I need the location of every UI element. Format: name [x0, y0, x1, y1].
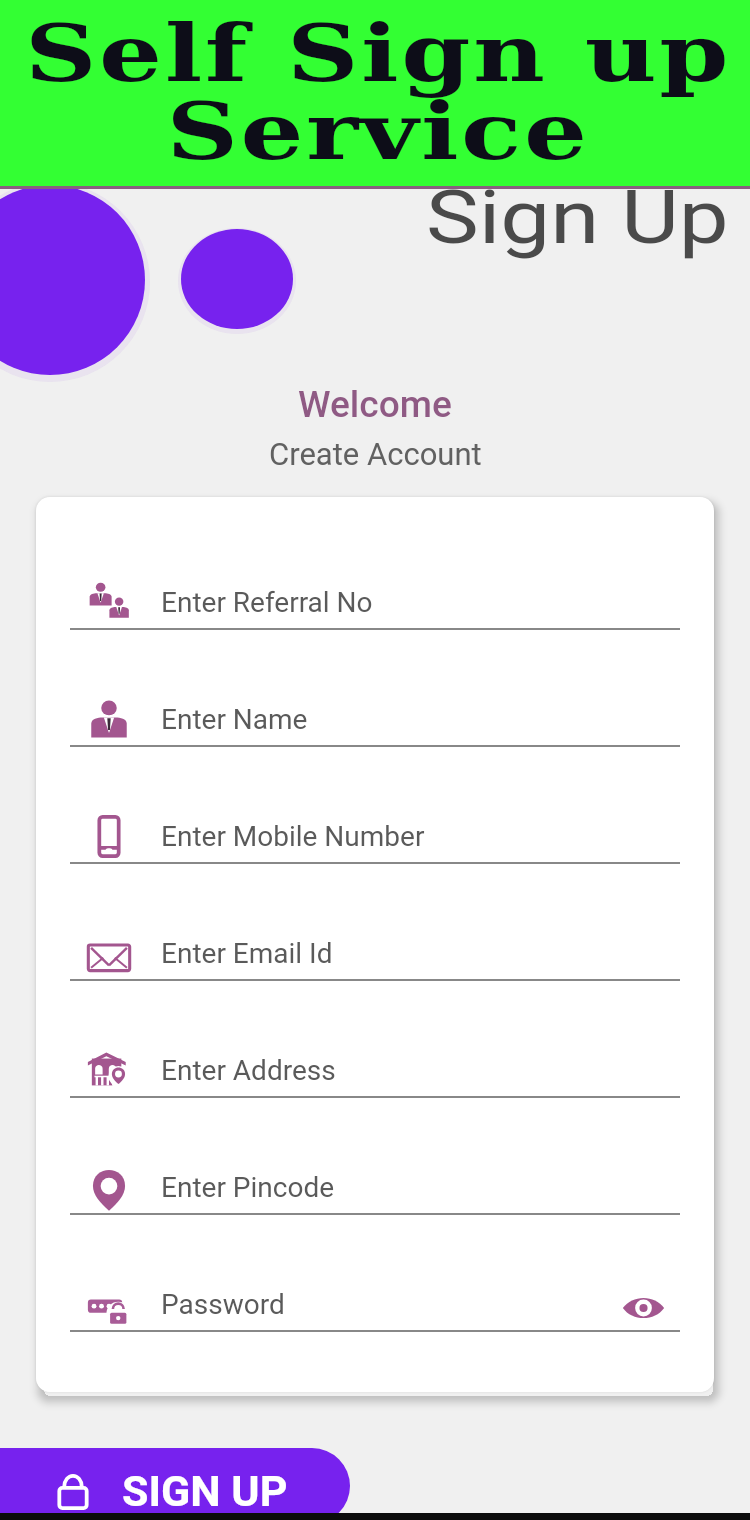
button[interactable]: Show password	[619, 1284, 667, 1332]
staticText: Welcome	[298, 383, 452, 426]
staticText: Enter Referral No	[161, 586, 373, 619]
staticText: SIGN UP	[122, 1466, 288, 1516]
staticText: Enter Email Id	[161, 937, 333, 970]
staticText: Sign Up	[426, 174, 730, 261]
staticText: Password	[161, 1288, 285, 1321]
button[interactable]: SIGN UP	[0, 1448, 350, 1520]
staticText: Enter Pincode	[161, 1171, 335, 1204]
staticText: Self Sign up Service	[25, 8, 731, 177]
staticText: Enter Name	[161, 703, 308, 736]
staticText: Create Account	[269, 436, 482, 472]
staticText: Enter Mobile Number	[161, 820, 425, 853]
staticText: Enter Address	[161, 1054, 336, 1087]
